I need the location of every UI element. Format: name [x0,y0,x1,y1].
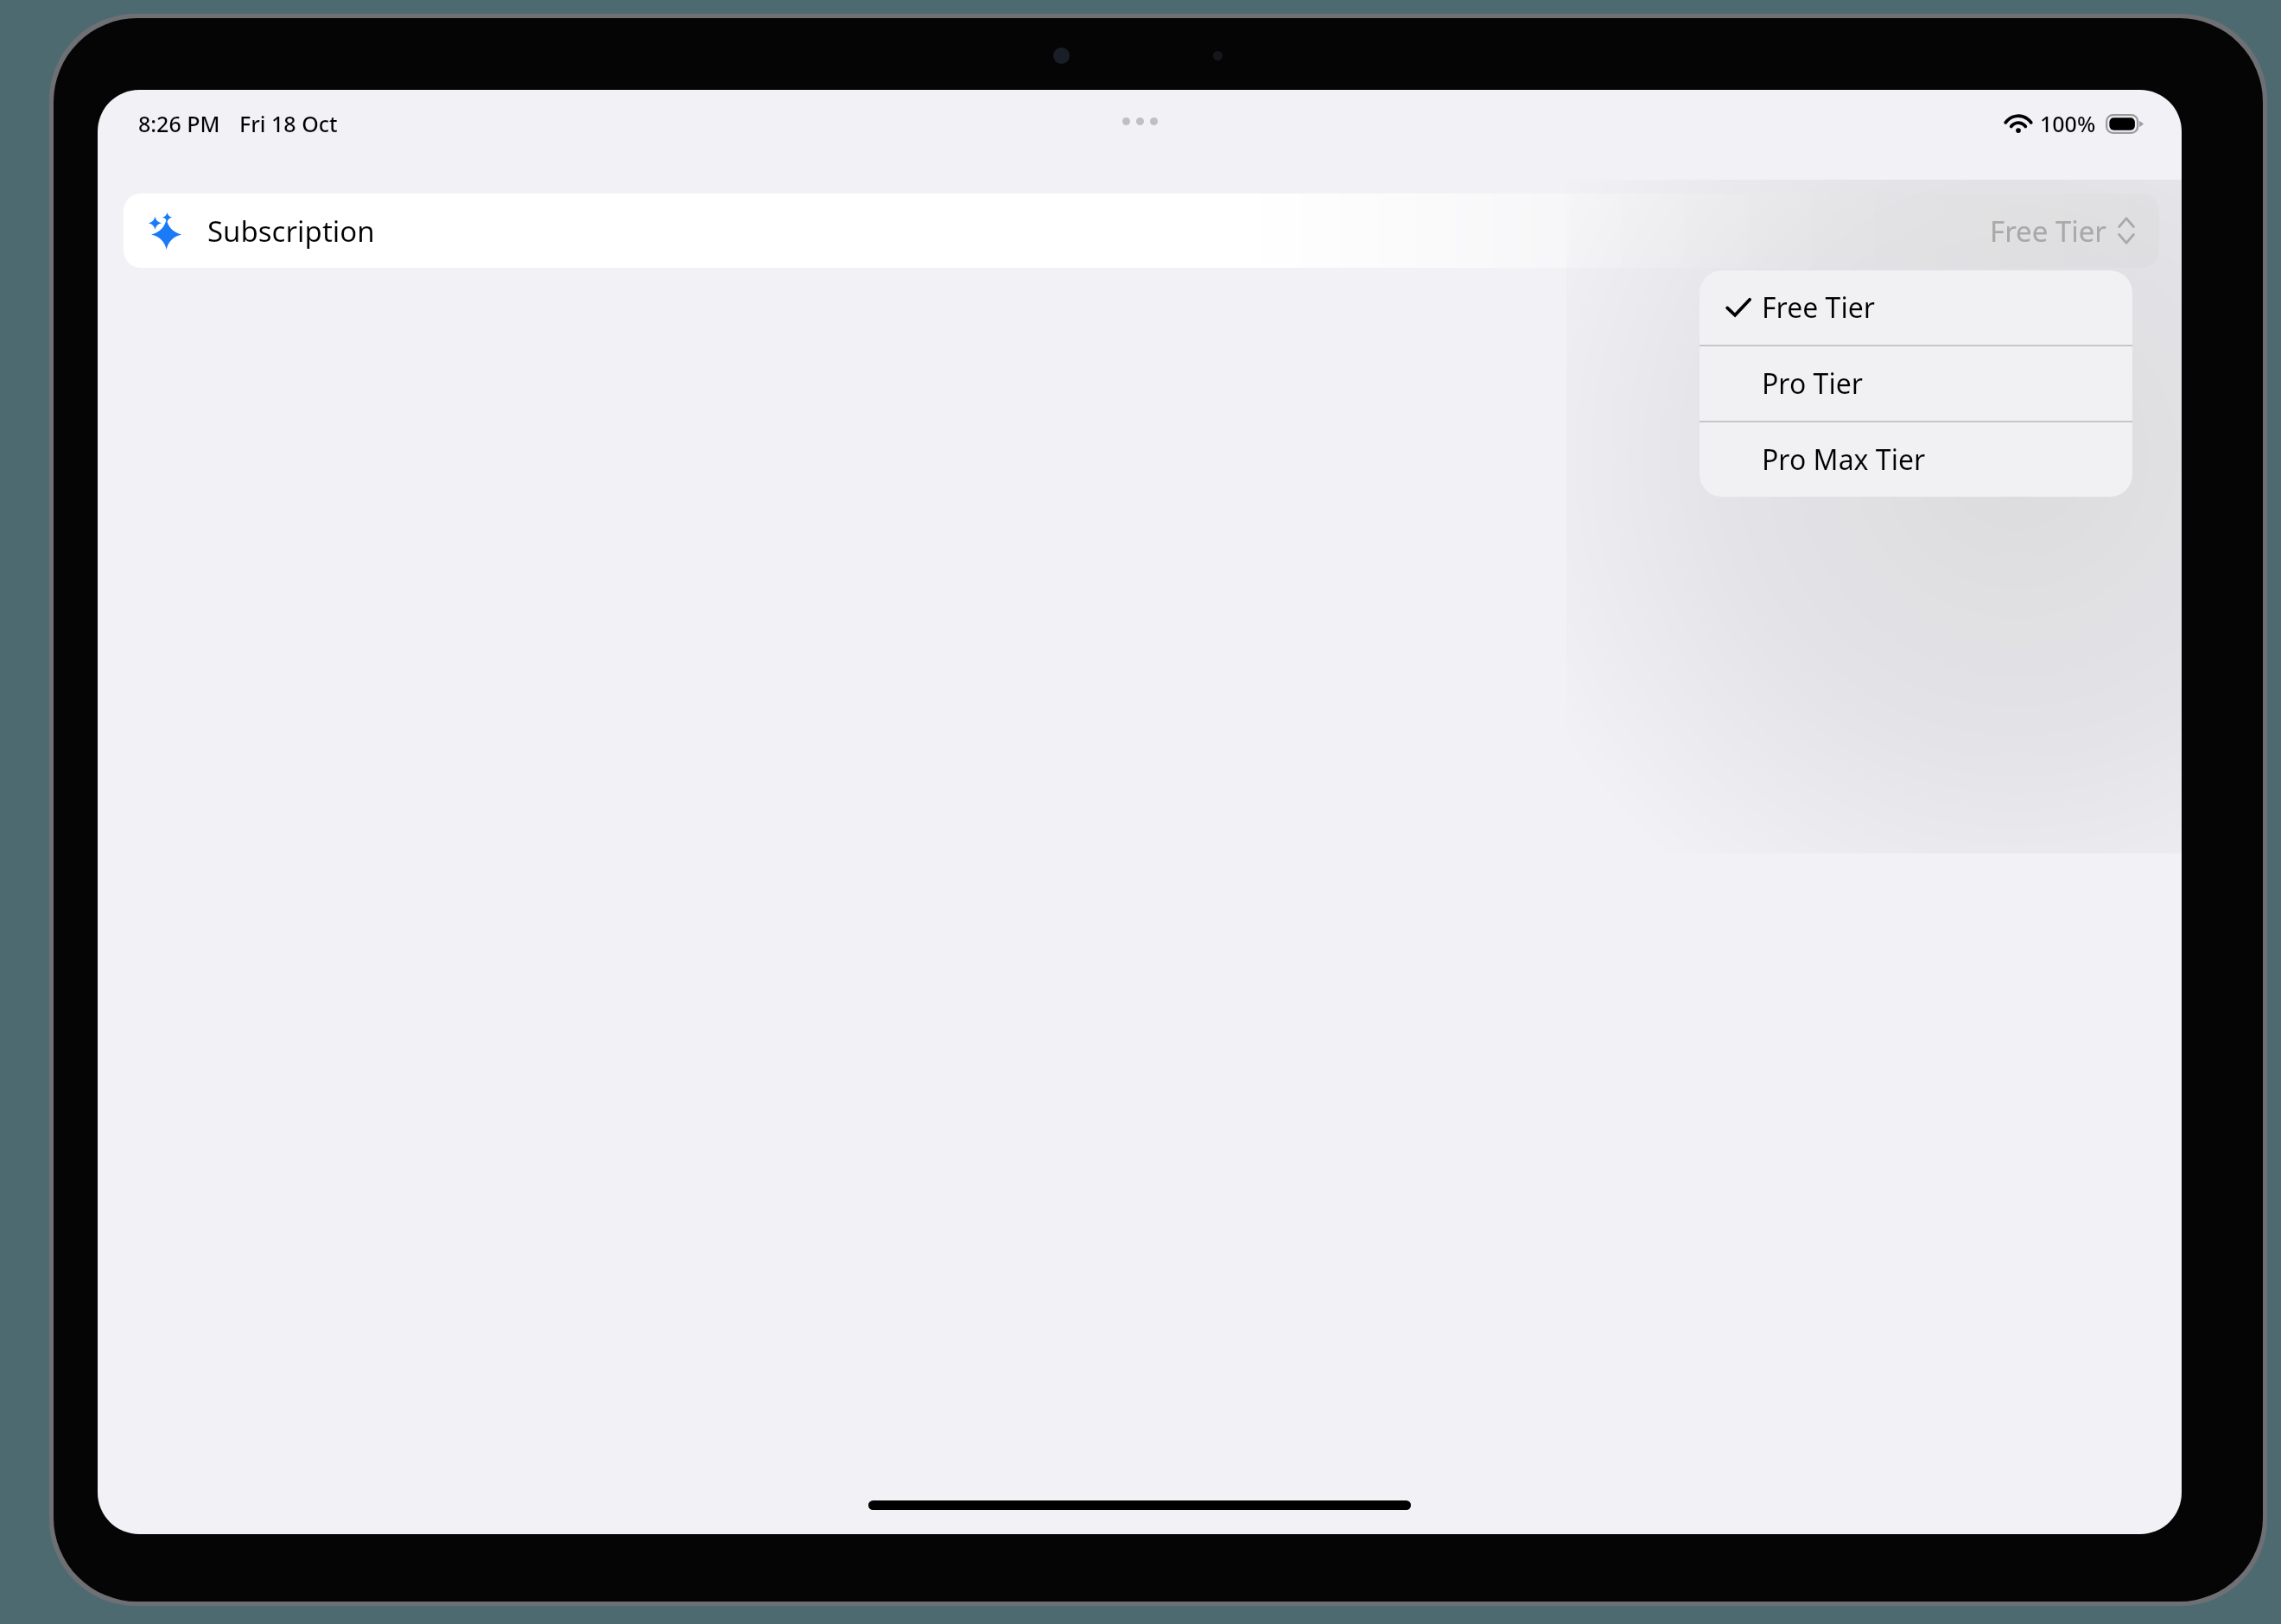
staticText: Subscription [207,212,375,251]
button[interactable]: Selected [1700,270,2132,345]
staticText: 8:26 PM [138,109,220,138]
other: Battery 100 percent [2106,114,2144,134]
other: Change tier [2118,217,2135,244]
staticText: 100% [2040,109,2096,138]
button[interactable]: Pro Max Tier [1700,422,2132,497]
button[interactable]: Subscription [124,193,2159,268]
other: Selected [1726,298,1750,317]
other: Wi-Fi [2005,114,2031,133]
staticText: Free Tier [1762,289,1875,327]
button[interactable]: Pro Tier [1700,346,2132,421]
staticText: Pro Tier [1762,365,1863,403]
staticText: Fri 18 Oct [239,109,338,138]
staticText: Pro Max Tier [1762,441,1926,479]
staticText: Free Tier [1990,212,2107,251]
